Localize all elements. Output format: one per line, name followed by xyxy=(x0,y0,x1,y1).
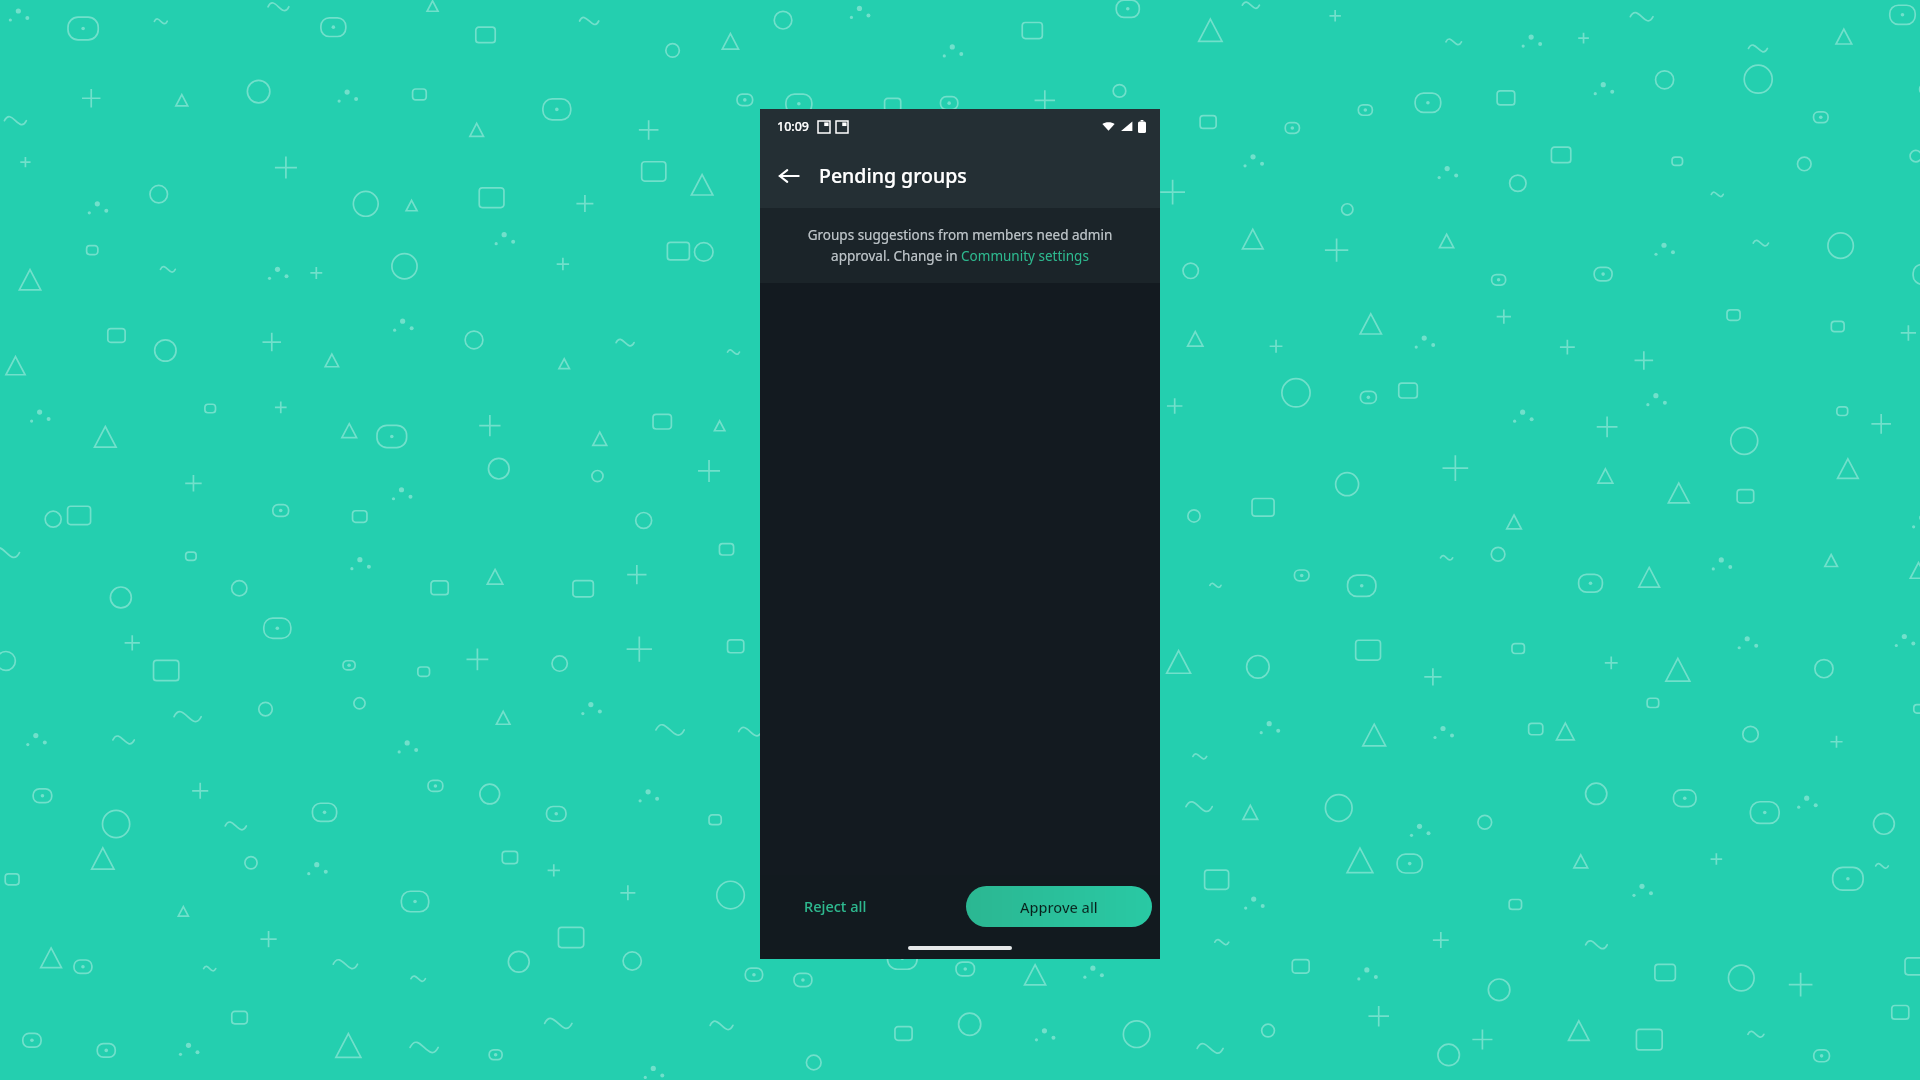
staticText: 10:09 xyxy=(777,118,810,135)
button[interactable]: Reject all xyxy=(784,886,887,926)
button[interactable]: Approve all xyxy=(966,886,1152,927)
staticText: Approve all xyxy=(1020,897,1098,917)
staticText: Pending groups xyxy=(819,162,967,189)
staticText: Reject all xyxy=(804,896,867,916)
staticText: Groups suggestions from members need adm… xyxy=(782,226,1138,265)
button[interactable]: Back xyxy=(768,155,810,197)
